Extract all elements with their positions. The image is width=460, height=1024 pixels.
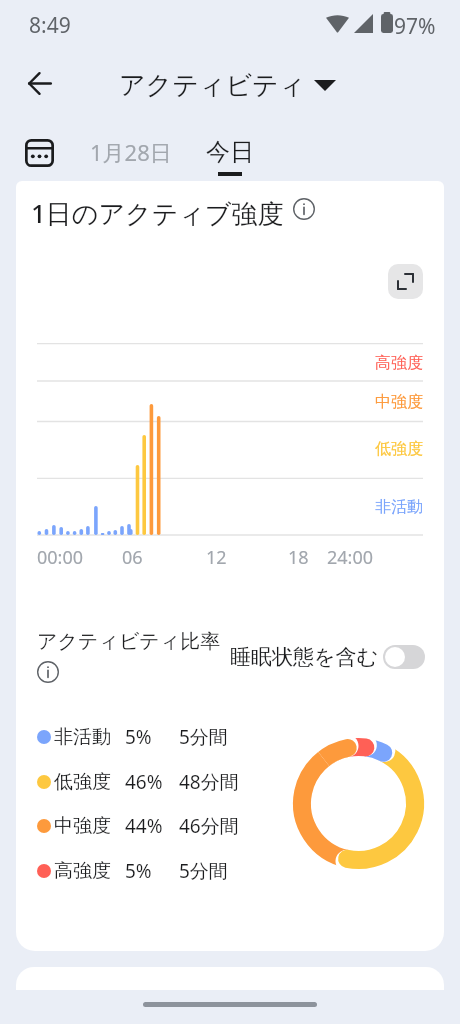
staticText: 高強度: [375, 353, 423, 373]
staticText: 5%: [125, 724, 152, 750]
staticText: 44%: [125, 813, 163, 839]
staticText: 非活動: [54, 725, 111, 749]
staticText: 46%: [125, 769, 163, 795]
staticText: アクティビティ比率: [37, 629, 221, 654]
button[interactable]: 今日: [198, 133, 262, 180]
staticText: 低強度: [54, 770, 111, 794]
button[interactable]: Calendar: [18, 132, 60, 174]
button[interactable]: Back: [16, 59, 64, 107]
staticText: 1日のアクティブ強度: [31, 195, 284, 231]
staticText: 8:49: [29, 11, 71, 40]
button[interactable]: 1月28日: [82, 133, 180, 171]
staticText: 06: [122, 545, 143, 570]
staticText: 1月28日: [90, 137, 172, 167]
button[interactable]: Expand chart: [388, 264, 423, 299]
staticText: 5%: [125, 858, 152, 884]
staticText: 中強度: [54, 814, 111, 838]
staticText: 24:00: [327, 545, 374, 570]
staticText: 18: [288, 545, 309, 570]
staticText: 今日: [206, 137, 254, 167]
staticText: 睡眠状態を含む: [230, 644, 378, 670]
button[interactable]: 睡眠状態を含む: [224, 640, 431, 674]
staticText: 00:00: [37, 545, 84, 570]
staticText: 非活動: [375, 497, 423, 517]
button[interactable]: 非活動: [32, 721, 228, 753]
staticText: 46分間: [179, 813, 239, 839]
button[interactable]: アクティビティ: [111, 64, 344, 107]
staticText: 低強度: [375, 439, 423, 459]
staticText: 48分間: [179, 769, 239, 795]
staticText: 97%: [394, 12, 436, 41]
staticText: 5分間: [179, 724, 228, 750]
staticText: 5分間: [179, 858, 228, 884]
staticText: アクティビティ: [119, 69, 306, 102]
staticText: 高強度: [54, 859, 111, 883]
staticText: 12: [206, 545, 227, 570]
button[interactable]: 低強度: [32, 766, 239, 798]
button[interactable]: 中強度: [32, 810, 239, 842]
button[interactable]: 高強度: [32, 855, 228, 887]
staticText: 中強度: [375, 392, 423, 412]
